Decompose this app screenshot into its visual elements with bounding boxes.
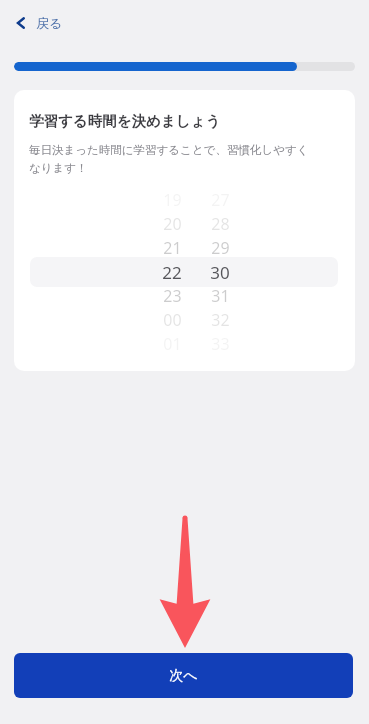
button[interactable]: 次へ bbox=[14, 653, 353, 698]
staticText: 次へ bbox=[169, 667, 198, 685]
staticText: 32 bbox=[211, 309, 230, 331]
staticText: 23 bbox=[163, 285, 182, 307]
staticText: 戻る bbox=[36, 15, 63, 31]
staticText: 00 bbox=[163, 309, 182, 331]
staticText: 27 bbox=[211, 189, 230, 211]
staticText: 22 bbox=[162, 261, 182, 283]
staticText: 29 bbox=[211, 237, 230, 259]
staticText: 学習する時間を決めましょう bbox=[29, 112, 221, 130]
button[interactable] bbox=[30, 257, 338, 287]
staticText: 33 bbox=[211, 333, 230, 355]
staticText: 19 bbox=[163, 189, 182, 211]
staticText: 20 bbox=[163, 213, 182, 235]
button[interactable]: Back bbox=[8, 10, 69, 36]
staticText: 30 bbox=[210, 261, 230, 283]
staticText: 31 bbox=[211, 285, 230, 307]
staticText: 28 bbox=[211, 213, 230, 235]
staticText: 21 bbox=[163, 237, 182, 259]
staticText: 毎日決まった時間に学習することで、習慣化しやすく なります！ bbox=[29, 143, 309, 176]
staticText: 01 bbox=[163, 333, 182, 355]
other: Back bbox=[14, 16, 28, 30]
